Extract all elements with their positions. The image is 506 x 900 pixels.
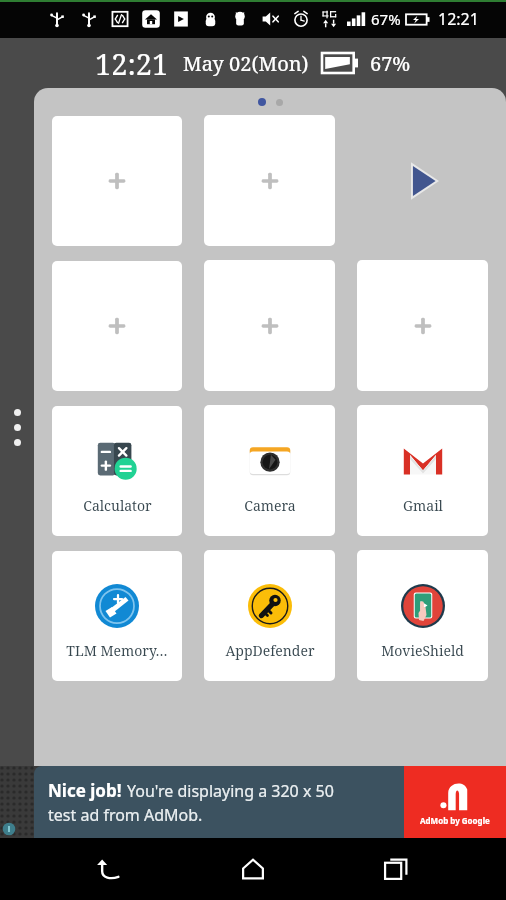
button[interactable]	[276, 99, 283, 106]
staticText: AppDefender	[225, 641, 315, 660]
staticText: Nice job!	[48, 779, 122, 802]
button[interactable]: Home	[220, 838, 286, 900]
button[interactable]: AppDefender	[204, 550, 335, 681]
button[interactable]: Add shortcut	[357, 260, 488, 391]
staticText: Calculator	[83, 496, 152, 515]
staticText: You're displaying a 320 x 50	[127, 780, 334, 802]
button[interactable]: Recent apps	[363, 838, 429, 900]
staticText: May 02(Mon)	[183, 50, 309, 77]
staticText: Gmail	[403, 496, 443, 515]
staticText: AdMob by Google	[420, 815, 490, 826]
staticText: MovieShield	[381, 641, 464, 660]
button[interactable]: Camera	[204, 405, 335, 536]
button[interactable]: Add shortcut	[204, 115, 335, 246]
button[interactable]: Back	[77, 838, 143, 900]
button[interactable]: Nice job!	[34, 766, 506, 838]
staticText: 12:21	[438, 8, 479, 30]
button[interactable]: Gmail	[357, 405, 488, 536]
staticText: 67%	[371, 9, 401, 29]
staticText: TLM Memory…	[66, 641, 168, 660]
staticText: 12:21	[95, 44, 169, 83]
button[interactable]: More options	[0, 397, 34, 457]
button[interactable]	[258, 98, 266, 106]
staticText: test ad from AdMob.	[48, 804, 203, 826]
button[interactable]: MovieShield	[357, 550, 488, 681]
button[interactable]: Add shortcut	[204, 260, 335, 391]
button[interactable]: Next page	[357, 115, 488, 246]
button[interactable]: TLM Memory…	[52, 551, 182, 681]
staticText: Camera	[244, 496, 296, 515]
button[interactable]: Add shortcut	[52, 116, 182, 246]
staticText: 67%	[370, 50, 411, 77]
button[interactable]: Calculator	[52, 406, 182, 536]
button[interactable]: 12:21	[0, 38, 506, 88]
button[interactable]: Add shortcut	[52, 261, 182, 391]
